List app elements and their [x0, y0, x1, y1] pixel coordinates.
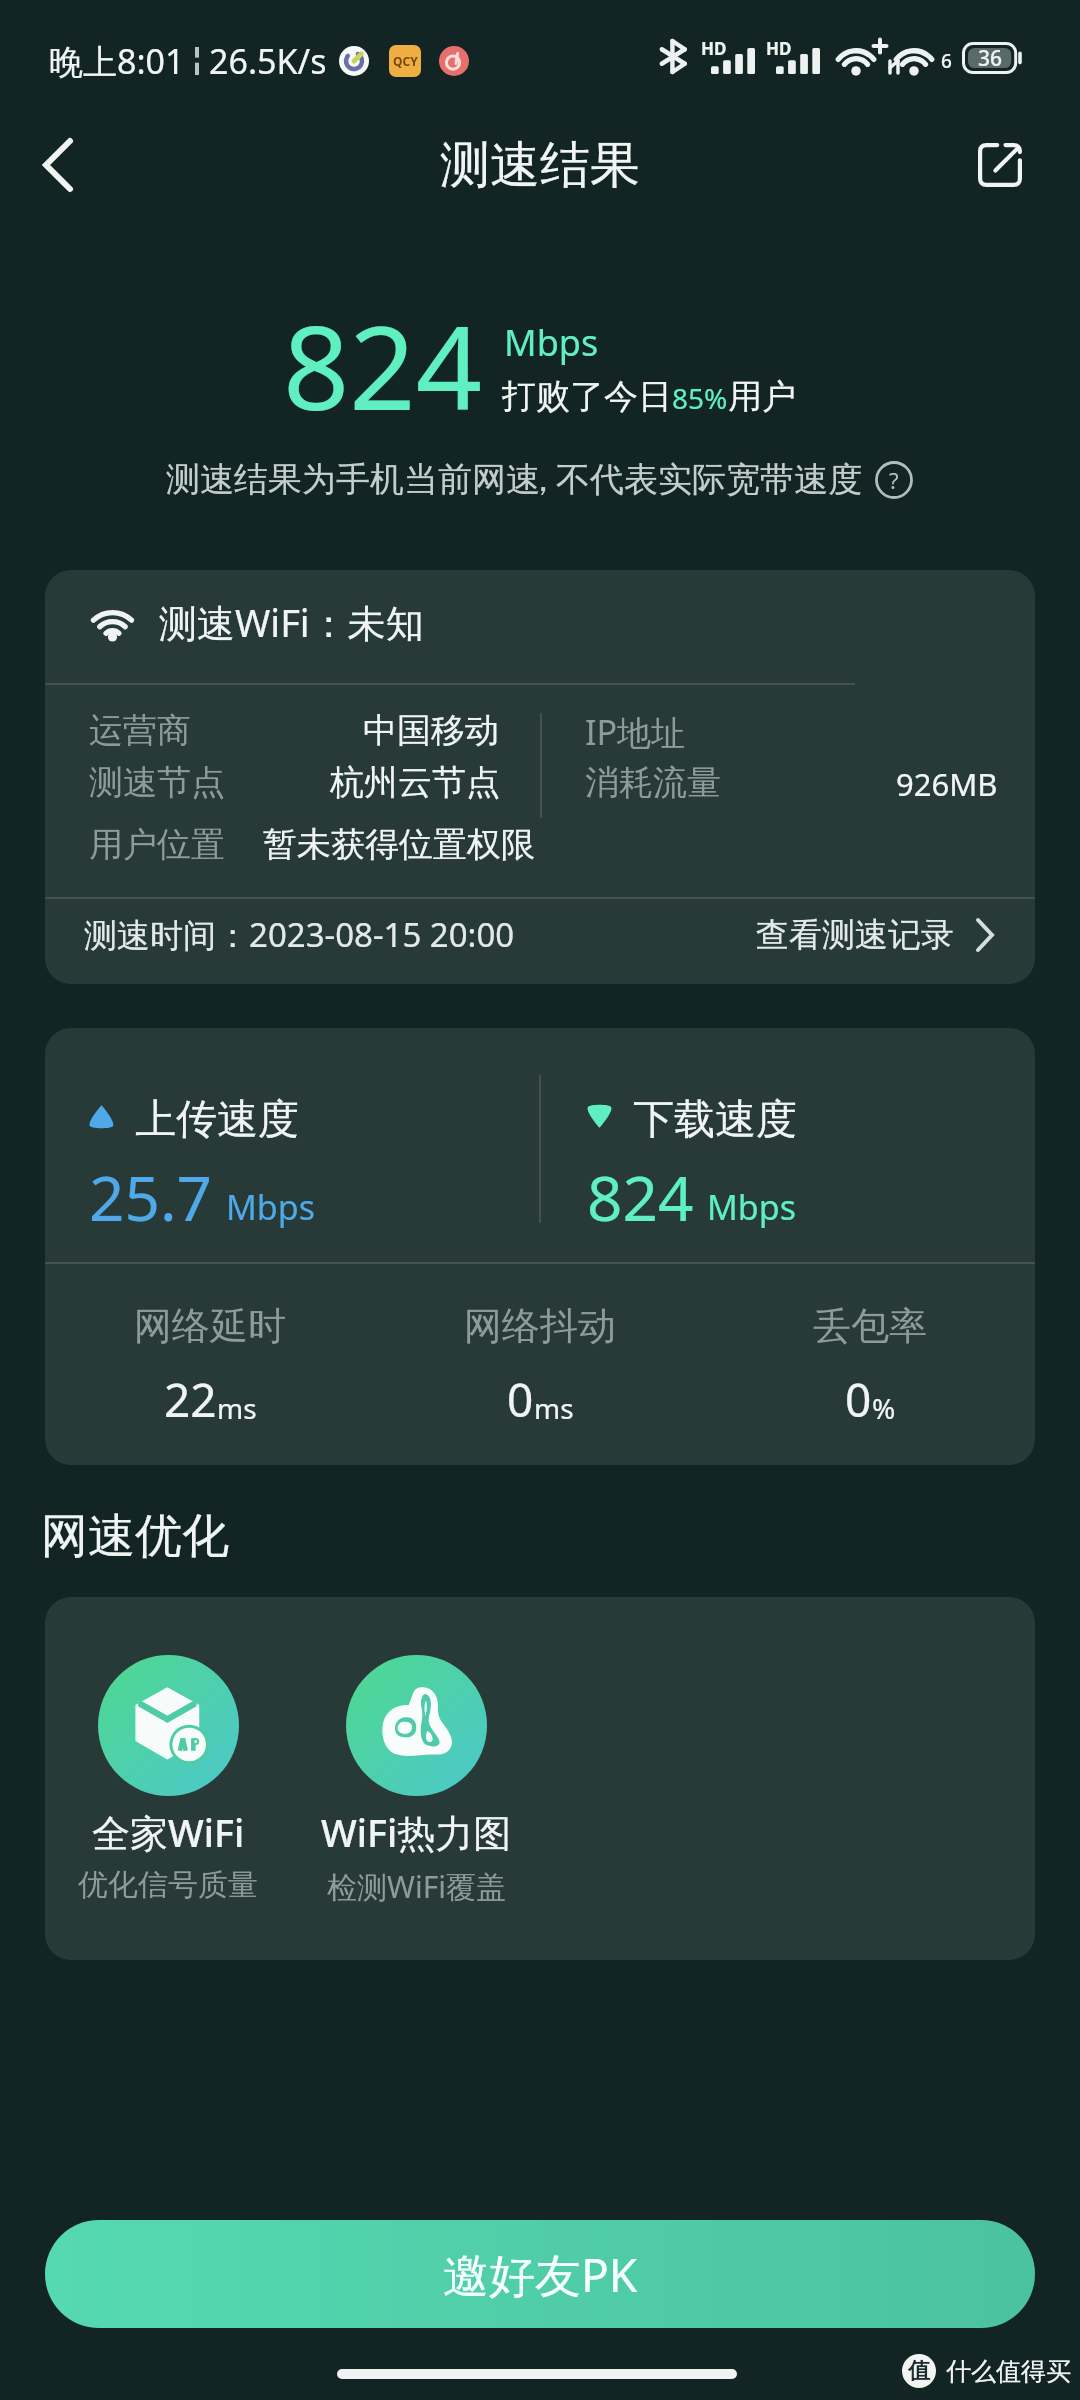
staticText: 值: [908, 2357, 930, 2385]
staticText: 不代表实际宽带速度: [556, 458, 862, 501]
staticText: %: [872, 1389, 896, 1427]
staticText: Mbps: [226, 1184, 315, 1230]
staticText: 检测WiFi覆盖: [327, 1866, 506, 1907]
staticText: 邀好友PK: [443, 2243, 638, 2306]
staticText: 测速时间：2023-08-15 20:00: [84, 912, 515, 957]
staticText: Mbps: [707, 1184, 796, 1230]
staticText: 6: [941, 48, 952, 74]
staticText: 什么值得买: [946, 2356, 1071, 2387]
staticText: 85%: [672, 379, 728, 417]
staticText: 下载速度: [633, 1094, 797, 1146]
button[interactable]: Share: [958, 110, 1042, 220]
button[interactable]: Help: [874, 460, 914, 500]
staticText: 25.7: [89, 1155, 213, 1239]
staticText: 824: [283, 286, 483, 444]
staticText: 暂未获得位置权限: [263, 823, 535, 866]
staticText: 运营商: [89, 709, 191, 752]
staticText: 22: [164, 1368, 217, 1431]
staticText: ms: [534, 1389, 574, 1427]
staticText: 中国移动: [363, 709, 499, 752]
staticText: 网速优化: [41, 1507, 229, 1566]
staticText: 丢包率: [813, 1302, 927, 1350]
staticText: 测速节点: [89, 761, 225, 804]
staticText: 上传速度: [135, 1094, 299, 1146]
staticText: WiFi热力图: [321, 1806, 512, 1858]
staticText: 926MB: [896, 763, 998, 805]
staticText: 0: [507, 1368, 534, 1431]
staticText: 查看测速记录: [756, 914, 954, 956]
staticText: 0: [845, 1368, 872, 1431]
staticText: ?: [889, 465, 899, 495]
button[interactable]: Back: [10, 110, 106, 220]
staticText: 26.5K/s: [209, 38, 327, 84]
staticText: QCY: [393, 53, 418, 69]
staticText: 网络延时: [134, 1302, 286, 1350]
staticText: 824: [587, 1155, 694, 1239]
staticText: 测速结果为手机当前网速: [166, 458, 540, 501]
staticText: 网络抖动: [464, 1302, 616, 1350]
button[interactable]: 邀好友PK: [45, 2220, 1035, 2328]
staticText: 全家WiFi: [92, 1806, 245, 1858]
staticText: Mbps: [504, 318, 599, 367]
staticText: 打败了今日: [502, 375, 672, 418]
staticText: 消耗流量: [585, 761, 721, 804]
staticText: 用户位置: [89, 823, 225, 866]
staticText: HD: [766, 37, 792, 60]
button[interactable]: 测速时间：2023-08-15 20:00: [45, 892, 1035, 977]
staticText: 晚上8:01: [49, 38, 185, 84]
staticText: 优化信号质量: [78, 1866, 258, 1904]
staticText: IP地址: [585, 709, 686, 755]
staticText: 36: [978, 44, 1003, 73]
staticText: 用户: [728, 375, 796, 418]
button[interactable]: WiFi热力图: [266, 1655, 566, 1907]
staticText: ms: [217, 1389, 257, 1427]
staticText: 杭州云节点: [330, 761, 500, 804]
staticText: ，: [526, 458, 560, 501]
staticText: HD: [701, 37, 727, 60]
staticText: 测速WiFi：未知: [159, 596, 424, 648]
button[interactable]: 全家WiFi: [45, 1655, 318, 1904]
staticText: 测速结果: [440, 134, 640, 197]
